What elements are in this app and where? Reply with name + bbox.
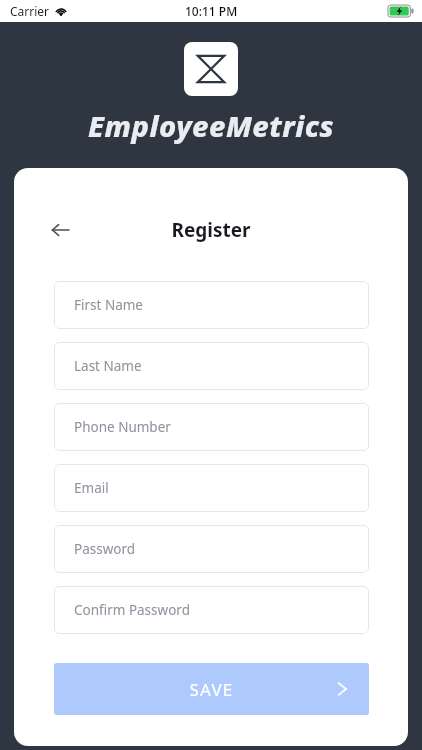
staticText: 10:11 PM	[185, 3, 238, 19]
staticText: Carrier	[10, 3, 50, 19]
staticText: EmployeeMetrics	[88, 106, 335, 145]
button[interactable]: Email	[54, 464, 369, 512]
button[interactable]: Phone Number	[54, 403, 369, 451]
button[interactable]: Last Name	[54, 342, 369, 390]
staticText: Register	[14, 217, 408, 243]
staticText: Email	[74, 479, 109, 497]
staticText: Last Name	[74, 357, 142, 375]
button[interactable]: Back	[42, 212, 78, 248]
staticText: SAVE	[54, 678, 369, 701]
button[interactable]: First Name	[54, 281, 369, 329]
staticText: Password	[74, 540, 136, 558]
button[interactable]: Password	[54, 525, 369, 573]
staticText: Phone Number	[74, 418, 171, 436]
staticText: Confirm Password	[74, 601, 190, 619]
staticText: First Name	[74, 296, 143, 314]
button[interactable]: SAVE	[54, 663, 369, 715]
button[interactable]: Confirm Password	[54, 586, 369, 634]
